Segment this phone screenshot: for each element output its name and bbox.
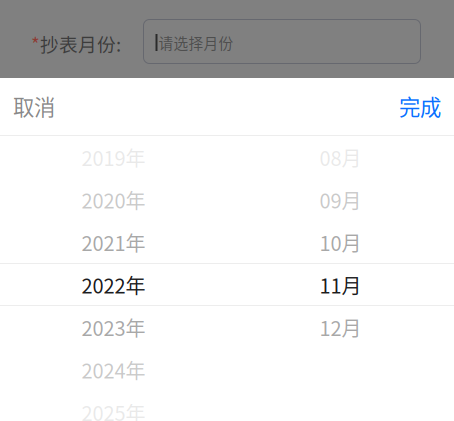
button[interactable]: 完成: [371, 77, 454, 134]
button[interactable]: 2019年: [0, 136, 227, 178]
staticText: 2025年: [81, 398, 145, 421]
button[interactable]: 2023年: [0, 306, 227, 348]
staticText: 09月: [319, 185, 361, 214]
staticText: 2021年: [81, 228, 145, 257]
button[interactable]: 2025年: [0, 391, 227, 421]
button[interactable]: 2022年: [0, 263, 227, 306]
button[interactable]: 12月: [227, 306, 454, 348]
staticText: 2019年: [81, 143, 145, 172]
staticText: 2024年: [81, 355, 145, 384]
staticText: *: [31, 30, 40, 57]
button[interactable]: 2020年: [0, 178, 227, 221]
button[interactable]: 请选择月份: [143, 19, 420, 63]
button[interactable]: 10月: [227, 221, 454, 263]
staticText: 2020年: [81, 185, 145, 214]
staticText: 2023年: [81, 313, 145, 342]
staticText: 2022年: [81, 270, 145, 299]
button[interactable]: 取消: [0, 77, 83, 134]
staticText: 10月: [319, 228, 361, 257]
staticText: 请选择月份: [158, 32, 233, 53]
staticText: 11月: [319, 270, 361, 299]
button[interactable]: 2024年: [0, 348, 227, 391]
staticText: 取消: [13, 91, 55, 121]
staticText: 抄表月份:: [40, 30, 121, 57]
staticText: 08月: [319, 143, 361, 172]
button[interactable]: 09月: [227, 178, 454, 221]
staticText: 完成: [399, 91, 441, 121]
button[interactable]: 2021年: [0, 221, 227, 263]
staticText: 12月: [319, 313, 361, 342]
button[interactable]: 11月: [227, 263, 454, 306]
